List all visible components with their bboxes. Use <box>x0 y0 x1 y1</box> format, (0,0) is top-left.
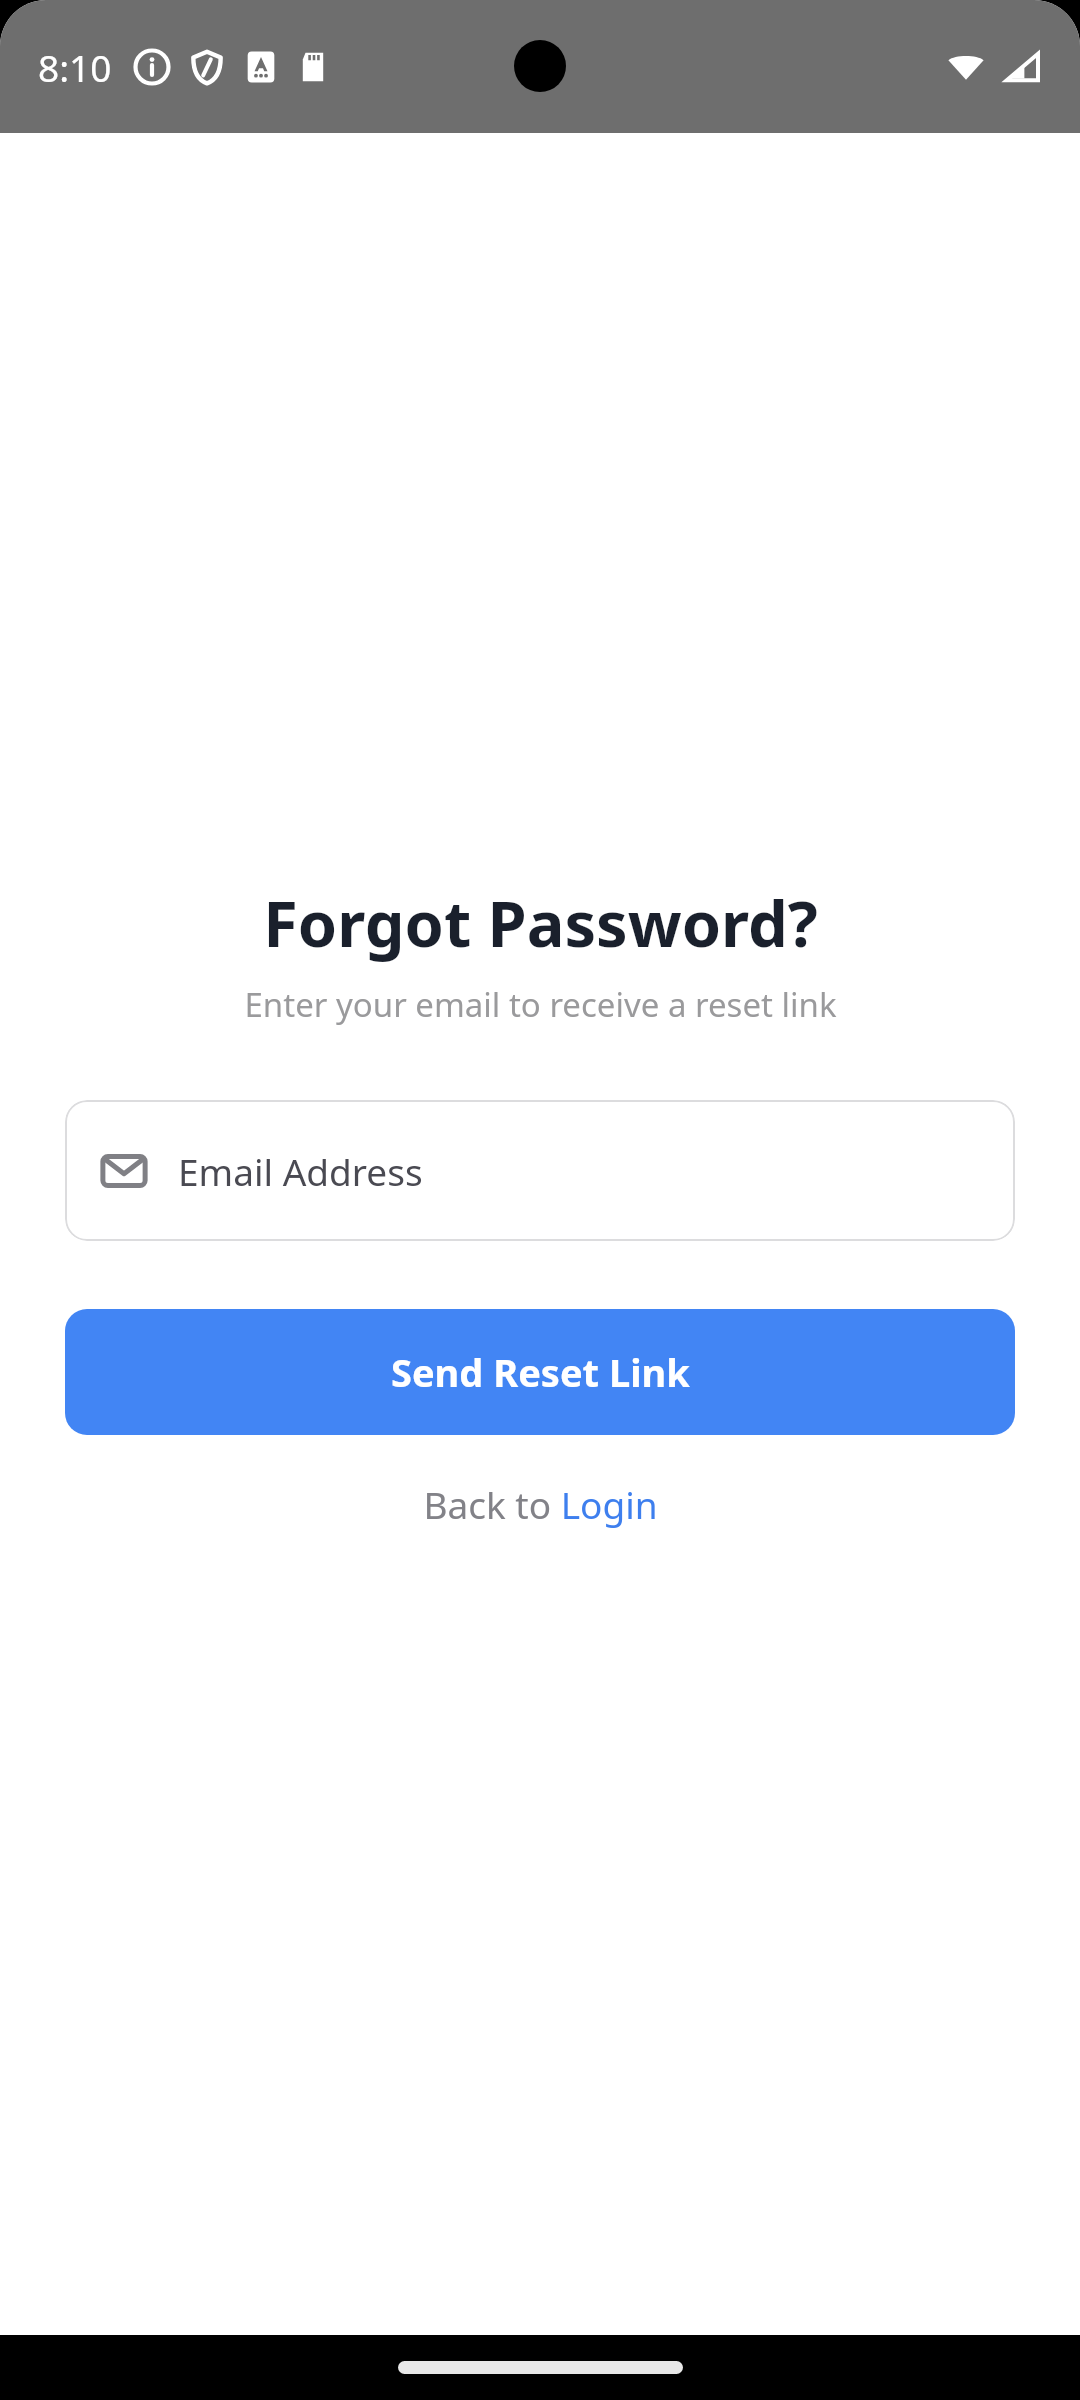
staticText: Back to Login <box>423 1479 658 1529</box>
button[interactable]: Back to Login <box>399 1469 682 1539</box>
other: Email <box>100 1147 148 1195</box>
staticText: Email Address <box>178 1146 423 1196</box>
button[interactable]: Email <box>65 1100 1015 1241</box>
button[interactable]: Send Reset Link <box>65 1309 1015 1435</box>
staticText: Forgot Password? <box>263 880 818 966</box>
staticText: 8:10 <box>38 42 112 92</box>
staticText: Enter your email to receive a reset link <box>244 982 837 1027</box>
staticText: Send Reset Link <box>391 1346 690 1398</box>
